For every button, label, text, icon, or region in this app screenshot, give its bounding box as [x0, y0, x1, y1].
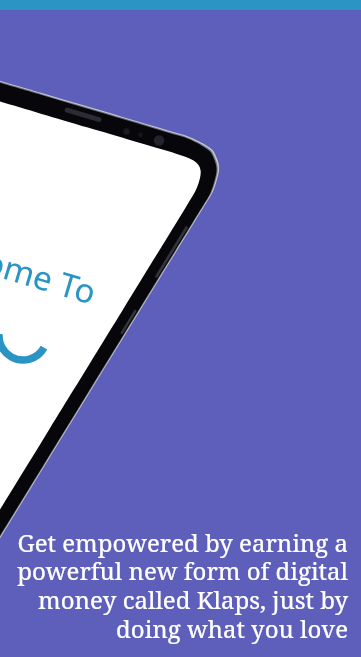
staticText: Welcome To	[0, 218, 102, 314]
staticText: Get empowered by earning a powerful new …	[11, 526, 348, 645]
